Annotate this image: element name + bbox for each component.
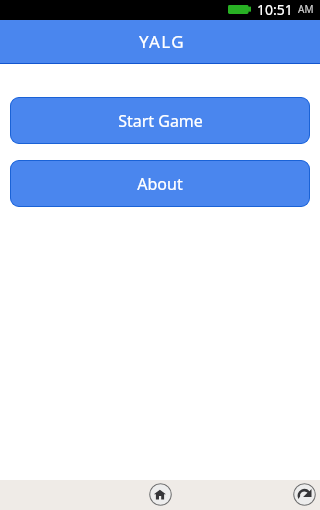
button[interactable]: Rotate — [293, 483, 316, 506]
button[interactable]: Start Game — [10, 97, 310, 144]
button[interactable]: About — [10, 160, 310, 207]
staticText: 10:51 — [257, 0, 293, 19]
staticText: About — [137, 173, 183, 195]
button[interactable]: Home — [149, 483, 172, 506]
staticText: Start Game — [118, 110, 203, 132]
staticText: YALG — [139, 30, 186, 53]
staticText: AM — [298, 2, 314, 16]
